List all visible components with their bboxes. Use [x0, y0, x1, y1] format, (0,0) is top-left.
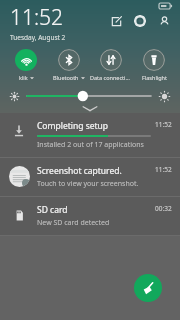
staticText: Bluetooth [53, 74, 79, 81]
button[interactable]: Completing setup [0, 113, 180, 157]
staticText: 11:52 [10, 3, 64, 32]
button[interactable]: Flashlight [133, 48, 175, 82]
staticText: Completing setup [37, 120, 109, 132]
button[interactable]: Settings [132, 13, 148, 29]
button[interactable]: Bluetooth [48, 48, 90, 82]
staticText: Flashlight [142, 74, 167, 81]
button[interactable]: klik [5, 48, 47, 82]
button[interactable]: Clear all notifications [134, 274, 162, 302]
button[interactable]: Data connection [90, 48, 132, 82]
staticText: klik [19, 74, 28, 81]
staticText: Screenshot captured. [37, 165, 122, 177]
staticText: Installed 2 out of 17 applications [37, 140, 144, 150]
staticText: Touch to view your screenshot. [37, 179, 139, 189]
staticText: Tuesday, August 2 [10, 33, 66, 42]
staticText: 11:52 [155, 120, 172, 129]
staticText: Data connection [90, 74, 132, 81]
button[interactable]: Screenshot captured. [0, 158, 180, 196]
staticText: 00:32 [155, 204, 172, 213]
staticText: SD card [37, 204, 68, 216]
button[interactable]: Brightness [27, 90, 151, 102]
button[interactable]: Edit quick settings [108, 13, 124, 29]
button[interactable]: User profile [156, 13, 172, 29]
staticText: 11:52 [155, 165, 172, 174]
button[interactable]: SD card [0, 197, 180, 235]
staticText: New SD card detected [37, 218, 110, 228]
